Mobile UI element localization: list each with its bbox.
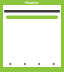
staticText: Header [25, 0, 39, 5]
